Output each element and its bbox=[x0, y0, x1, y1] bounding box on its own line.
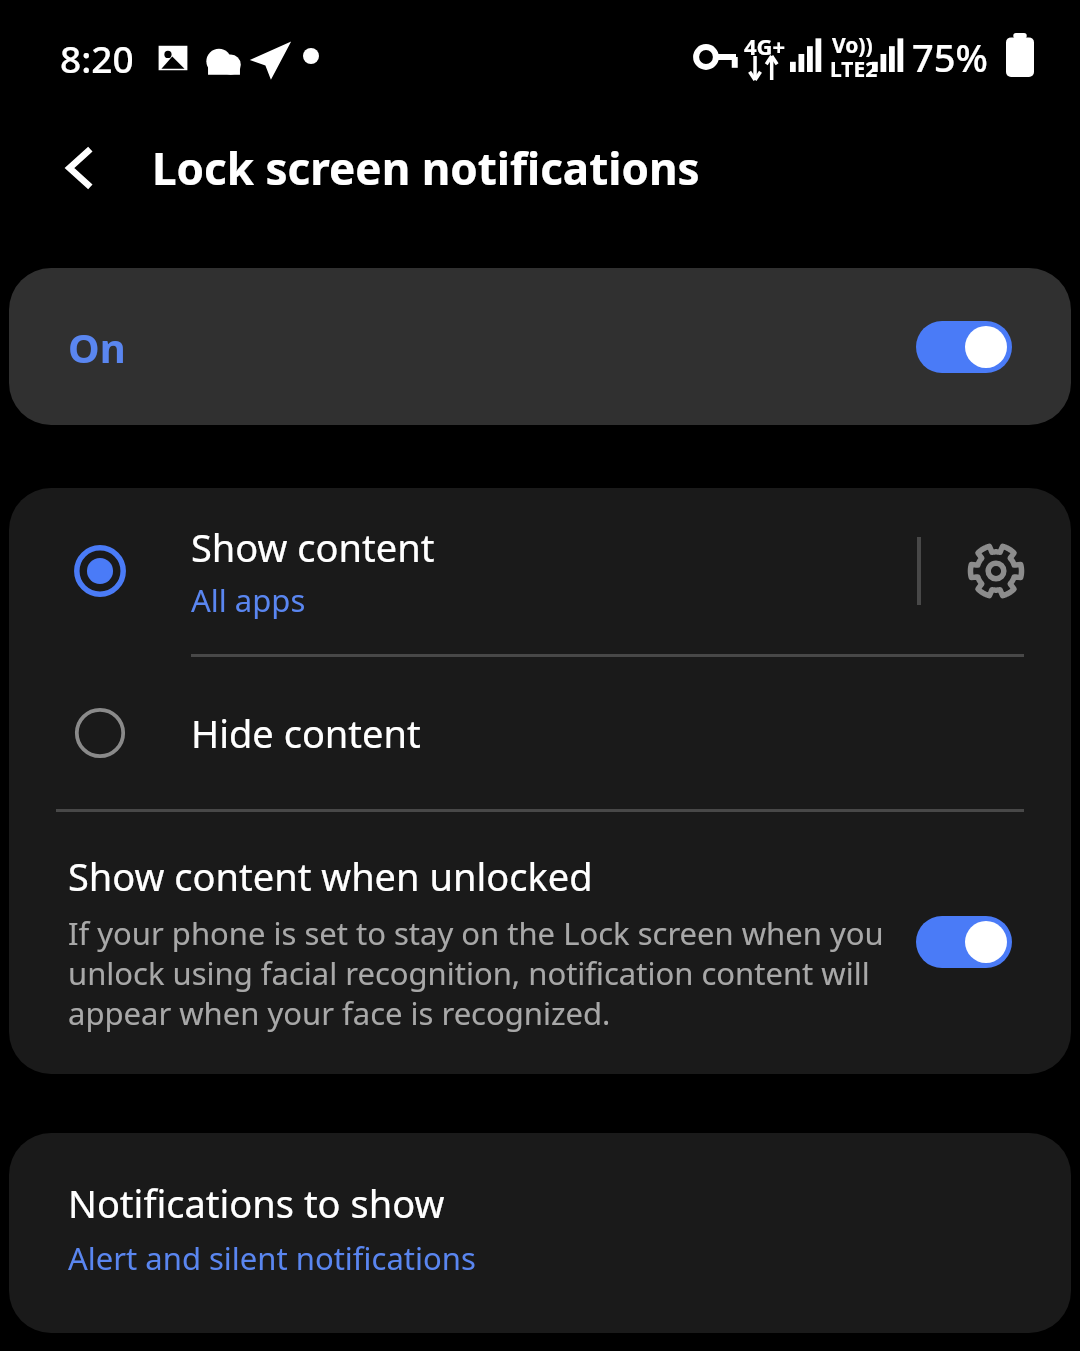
staticText: Notifications to show bbox=[68, 1177, 445, 1229]
button[interactable]: Notifications to show bbox=[9, 1133, 1071, 1333]
staticText: On bbox=[68, 320, 126, 374]
button[interactable]: On bbox=[9, 268, 1071, 425]
staticText: Alert and silent notifications bbox=[68, 1237, 476, 1279]
staticText: Hide content bbox=[191, 707, 421, 759]
button[interactable]: Hide content bbox=[9, 657, 1071, 809]
button[interactable]: Show content when unlocked bbox=[9, 812, 1071, 1074]
staticText: LTE2 bbox=[830, 55, 878, 84]
staticText: 4G+ bbox=[744, 31, 786, 61]
staticText: If your phone is set to stay on the Lock… bbox=[68, 912, 892, 1034]
button[interactable]: Toggle bbox=[916, 321, 1012, 373]
button[interactable]: Settings bbox=[921, 511, 1071, 631]
button[interactable]: Show content bbox=[9, 488, 1071, 654]
staticText: 8:20 bbox=[60, 33, 134, 83]
staticText: 75% bbox=[912, 31, 988, 83]
staticText: Show content bbox=[191, 521, 435, 573]
button[interactable]: Toggle bbox=[916, 916, 1012, 968]
staticText: All apps bbox=[191, 579, 306, 621]
staticText: Vo)) bbox=[832, 31, 873, 60]
staticText: Lock screen notifications bbox=[152, 138, 700, 198]
staticText: Show content when unlocked bbox=[68, 850, 593, 902]
button[interactable]: Back bbox=[40, 128, 120, 208]
